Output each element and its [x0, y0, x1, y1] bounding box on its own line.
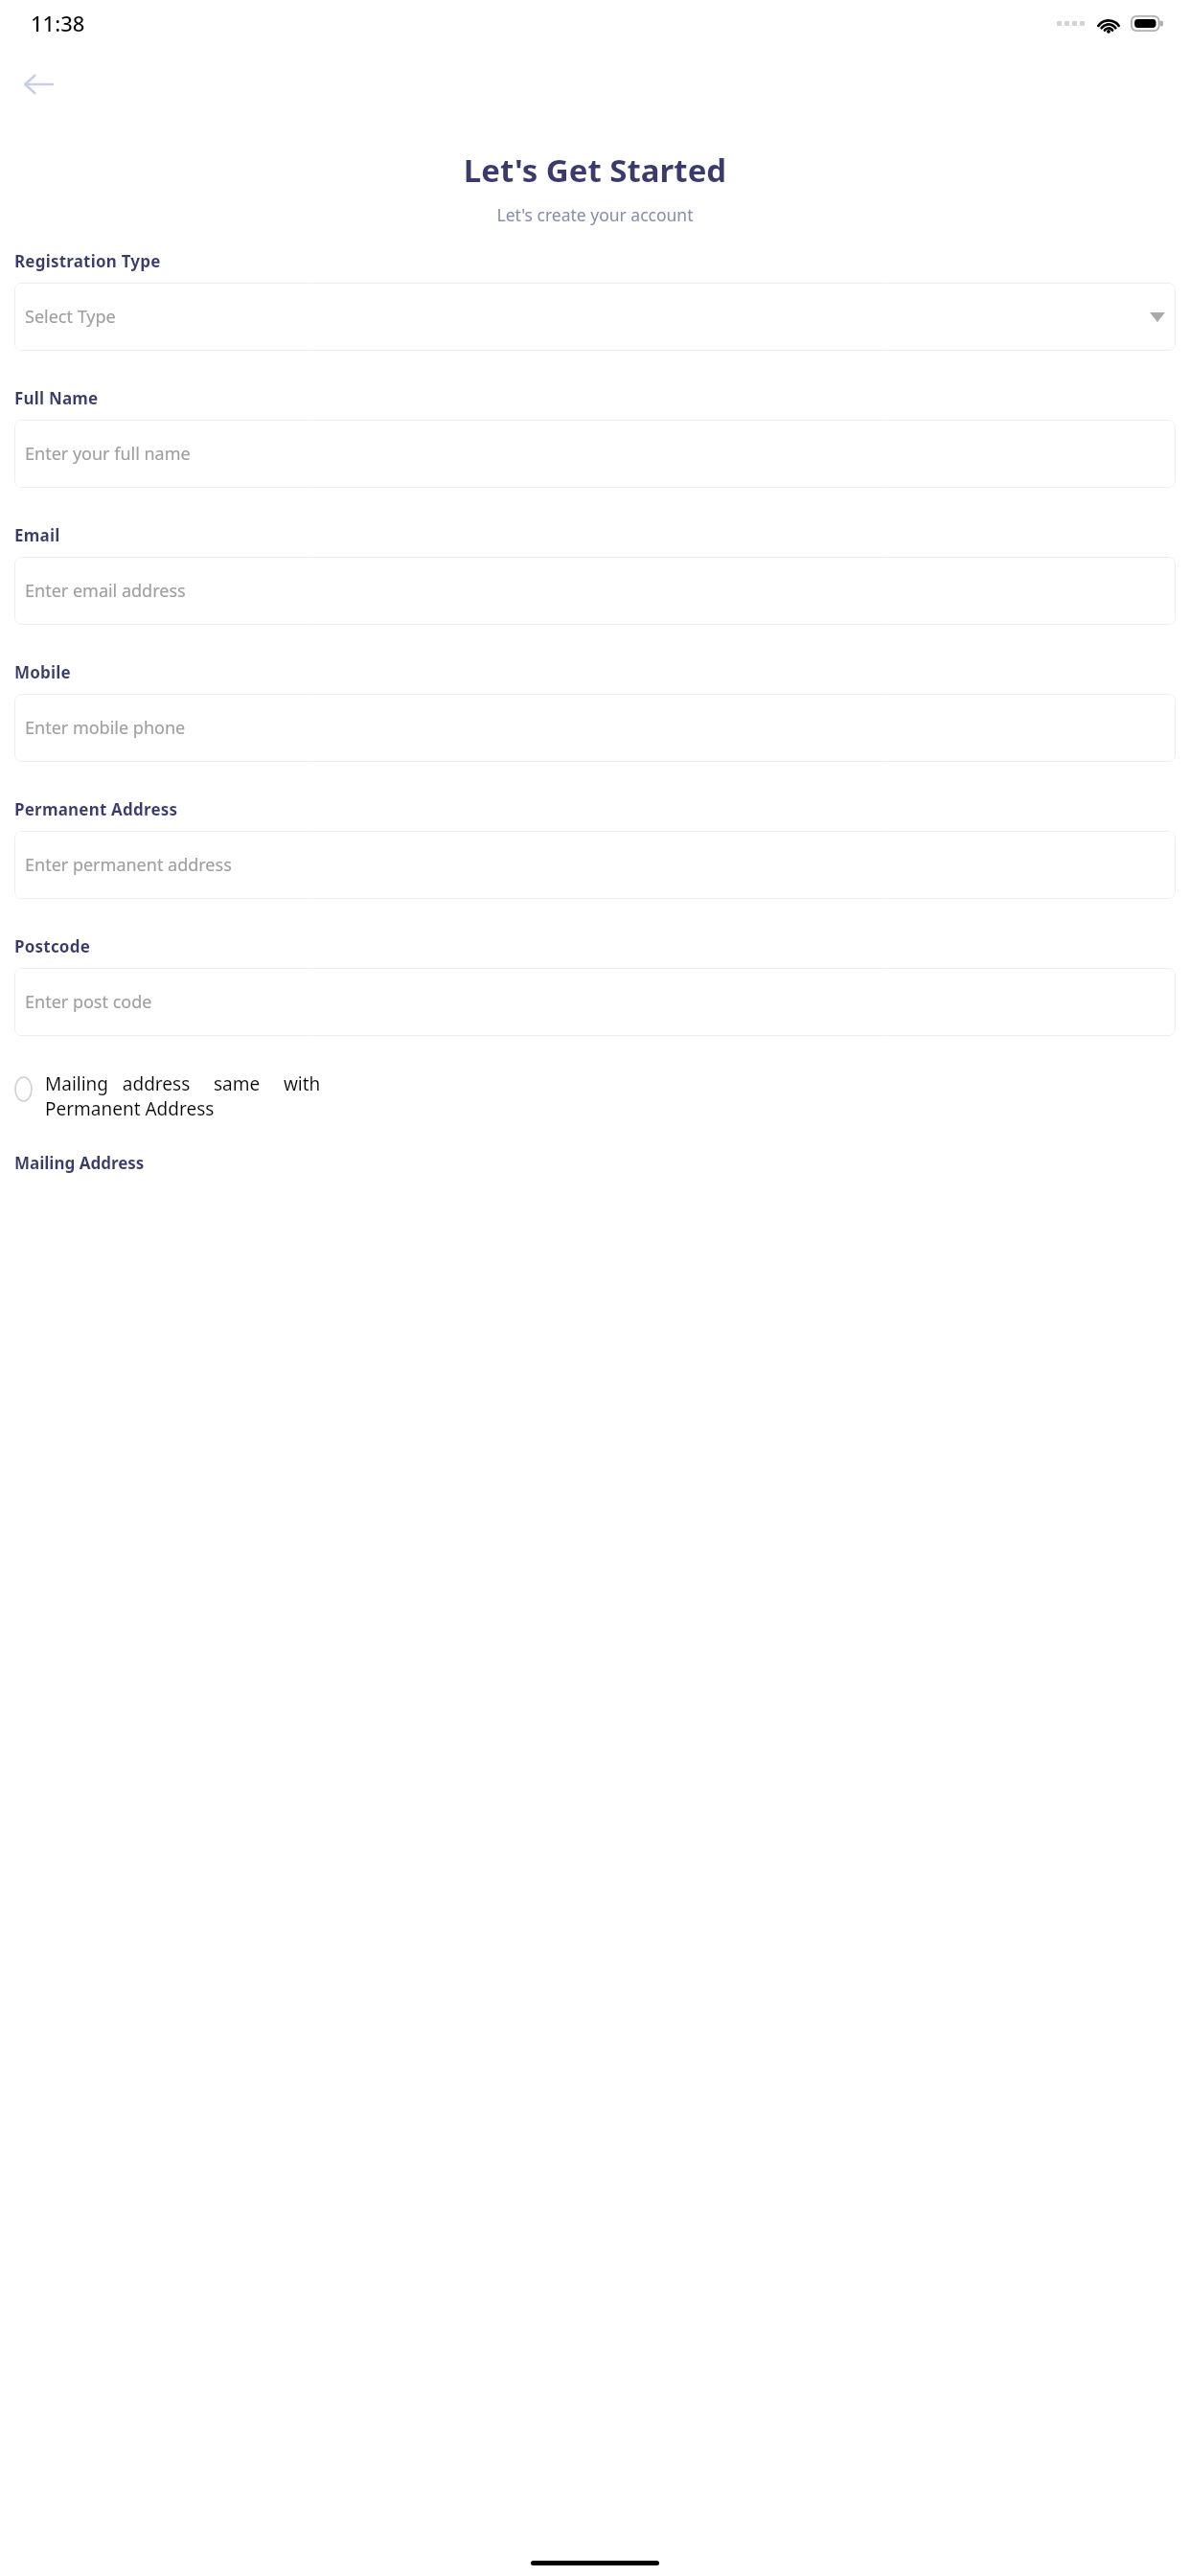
staticText: 11:38	[31, 9, 85, 37]
staticText: Email	[14, 524, 60, 546]
button[interactable]: Enter mobile phone	[14, 694, 1176, 762]
staticText: Permanent Address	[14, 798, 178, 820]
staticText: Registration Type	[14, 250, 161, 272]
button[interactable]: Back	[16, 62, 60, 106]
button[interactable]: Enter post code	[14, 968, 1176, 1036]
staticText: Mailing address same with Permanent Addr…	[45, 1071, 321, 1121]
button[interactable]: Enter your full name	[14, 420, 1176, 488]
button[interactable]: Enter email address	[14, 557, 1176, 625]
staticText: Select Type	[25, 305, 116, 329]
staticText: Mailing Address	[14, 1152, 145, 1174]
button[interactable]: Mailing address same with Permanent Addr…	[14, 1071, 1176, 1121]
staticText: Let's create your account	[0, 203, 1190, 226]
staticText: Full Name	[14, 387, 99, 409]
staticText: Enter permanent address	[25, 853, 232, 877]
staticText: Postcode	[14, 935, 90, 957]
staticText: Enter email address	[25, 579, 186, 603]
staticText: Let's Get Started	[0, 149, 1190, 192]
staticText: Enter post code	[25, 990, 152, 1014]
staticText: Enter your full name	[25, 442, 191, 466]
staticText: Enter mobile phone	[25, 716, 186, 740]
staticText: Mobile	[14, 661, 71, 683]
button[interactable]: Select Type	[14, 283, 1176, 351]
button[interactable]: Enter permanent address	[14, 831, 1176, 899]
